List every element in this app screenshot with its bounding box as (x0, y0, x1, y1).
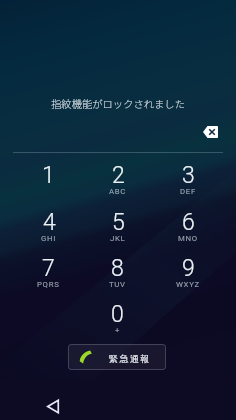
button[interactable]: 6 (152, 209, 223, 253)
staticText: GHI (41, 234, 57, 243)
button[interactable]: 7 (13, 255, 84, 299)
staticText: PQRS (37, 280, 60, 289)
button[interactable]: 4 (13, 209, 84, 253)
staticText: WXYZ (176, 280, 200, 289)
staticText: + (115, 326, 121, 335)
staticText: ABC (109, 187, 127, 196)
button[interactable]: Back (36, 380, 70, 420)
staticText: 0 (111, 301, 124, 328)
button[interactable]: 8 (82, 255, 153, 299)
staticText: 7 (42, 255, 55, 282)
button[interactable]: 3 (152, 162, 223, 206)
staticText: 6 (182, 209, 195, 236)
button[interactable]: 緊急通報 (68, 344, 166, 370)
staticText: 緊急通報 (109, 353, 151, 364)
button[interactable]: 0 (82, 301, 153, 345)
staticText: 4 (43, 209, 56, 236)
staticText: 2 (112, 162, 125, 189)
button[interactable]: 5 (82, 209, 153, 253)
staticText: 8 (111, 255, 124, 282)
button[interactable]: 9 (152, 255, 223, 299)
button[interactable]: 1 (13, 162, 84, 206)
staticText: DEF (180, 187, 196, 196)
staticText: TUV (109, 280, 126, 289)
staticText: 1 (42, 162, 55, 189)
staticText: 指紋機能がロックされました (0, 96, 236, 111)
staticText: 5 (112, 209, 125, 236)
staticText: 3 (182, 162, 195, 189)
button[interactable]: Backspace (196, 117, 225, 146)
staticText: 9 (182, 255, 195, 282)
staticText: MNO (178, 234, 198, 243)
button[interactable]: 2 (82, 162, 153, 206)
staticText: JKL (110, 234, 126, 243)
